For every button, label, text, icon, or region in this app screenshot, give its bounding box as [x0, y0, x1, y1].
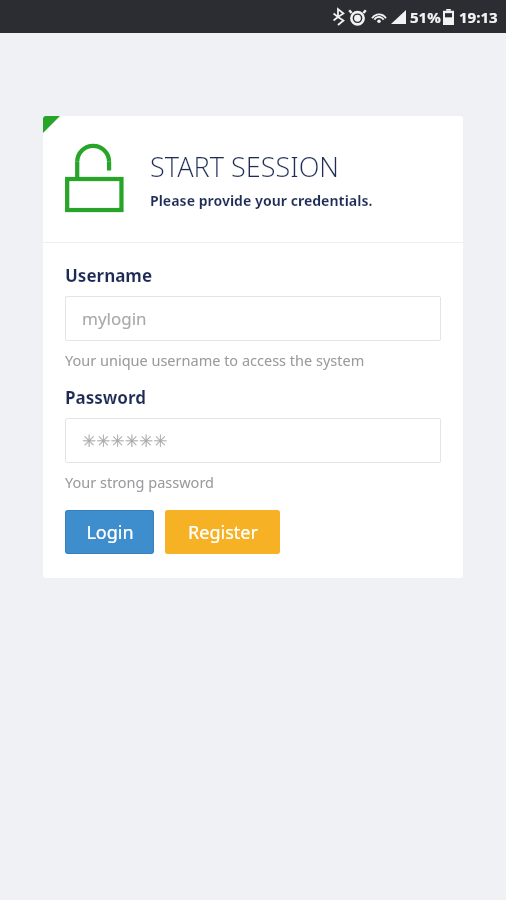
button[interactable]: ✳✳✳✳✳✳ [65, 418, 441, 463]
staticText: ✳✳✳✳✳✳ [82, 431, 168, 451]
staticText: Your unique username to access the syste… [65, 350, 365, 370]
staticText: Register [188, 520, 258, 545]
button[interactable]: Login [65, 510, 154, 554]
staticText: Password [65, 386, 146, 409]
staticText: 19:13 [459, 7, 498, 27]
staticText: Login [86, 520, 134, 545]
button[interactable]: mylogin [65, 296, 441, 341]
staticText: 51% [410, 7, 441, 27]
button[interactable]: Register [165, 510, 280, 554]
staticText: Username [65, 264, 153, 287]
staticText: START SESSION [150, 148, 340, 185]
staticText: Please provide your credentials. [150, 191, 373, 210]
staticText: mylogin [82, 307, 147, 330]
staticText: Your strong password [65, 472, 215, 492]
